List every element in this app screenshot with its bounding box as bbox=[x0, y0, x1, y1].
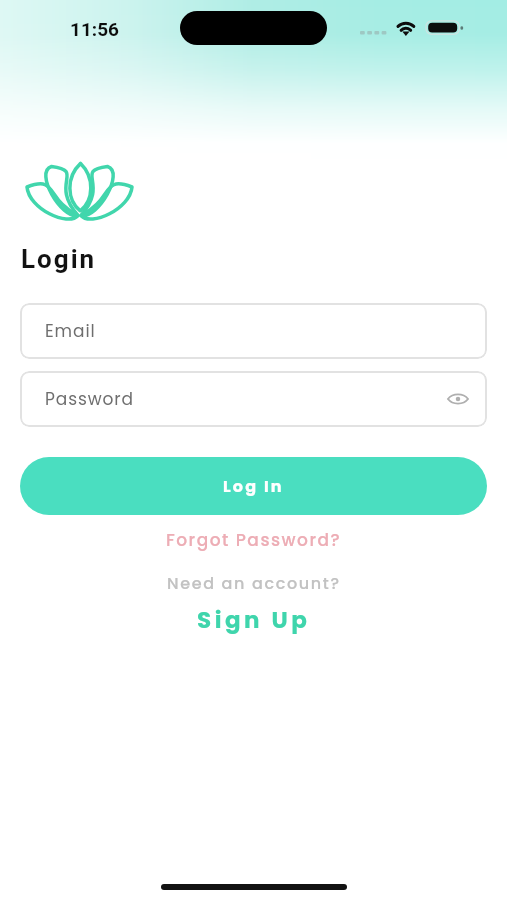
other: Wi-Fi bbox=[394, 20, 418, 36]
button[interactable]: Email bbox=[20, 303, 487, 359]
other: Battery bbox=[426, 20, 464, 35]
staticText: Login bbox=[21, 244, 97, 274]
button[interactable]: Password bbox=[20, 371, 487, 427]
other: Cellular signal bbox=[360, 31, 387, 35]
button[interactable]: Sign Up bbox=[0, 604, 507, 636]
staticText: Forgot Password? bbox=[166, 528, 342, 552]
other: Show password bbox=[446, 391, 470, 407]
staticText: Email bbox=[45, 319, 96, 343]
button[interactable]: Forgot Password? bbox=[0, 526, 507, 554]
staticText: 11:56 bbox=[70, 18, 119, 40]
button[interactable]: Log In bbox=[20, 457, 487, 515]
staticText: Log In bbox=[223, 475, 284, 497]
staticText: Password bbox=[45, 387, 134, 411]
staticText: Sign Up bbox=[197, 604, 311, 636]
staticText: Need an account? bbox=[167, 572, 341, 594]
